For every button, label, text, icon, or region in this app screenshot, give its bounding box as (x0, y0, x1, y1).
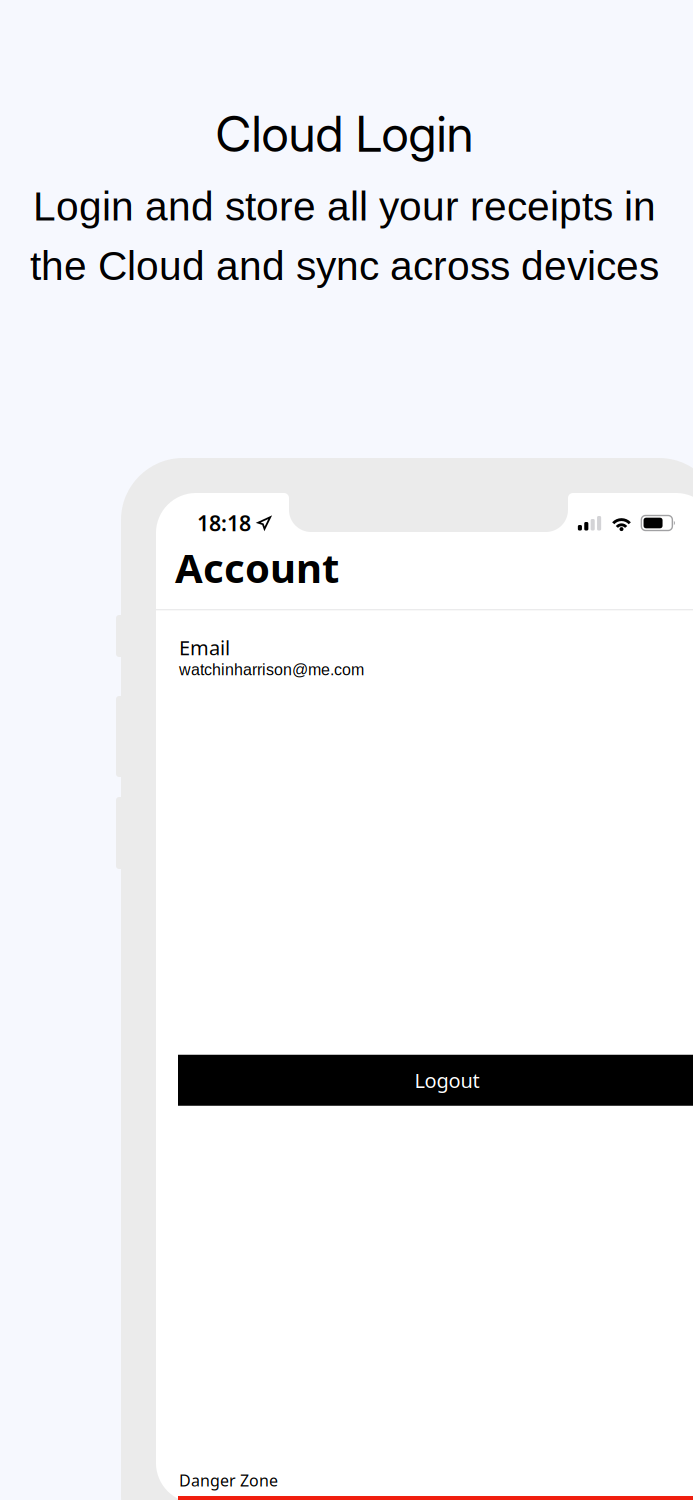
staticText: Account (175, 541, 339, 594)
staticText: Danger Zone (179, 1470, 278, 1491)
staticText: Login and store all your receipts in (33, 184, 656, 229)
staticText: watchinharrison@me.com (179, 661, 364, 679)
staticText: Cloud Login (215, 104, 473, 164)
staticText: Logout (414, 1067, 479, 1094)
staticText: Email (179, 634, 230, 661)
staticText: 18:18 (197, 509, 251, 537)
staticText: the Cloud and sync across devices (30, 243, 659, 288)
button[interactable]: Logout (178, 1055, 693, 1106)
